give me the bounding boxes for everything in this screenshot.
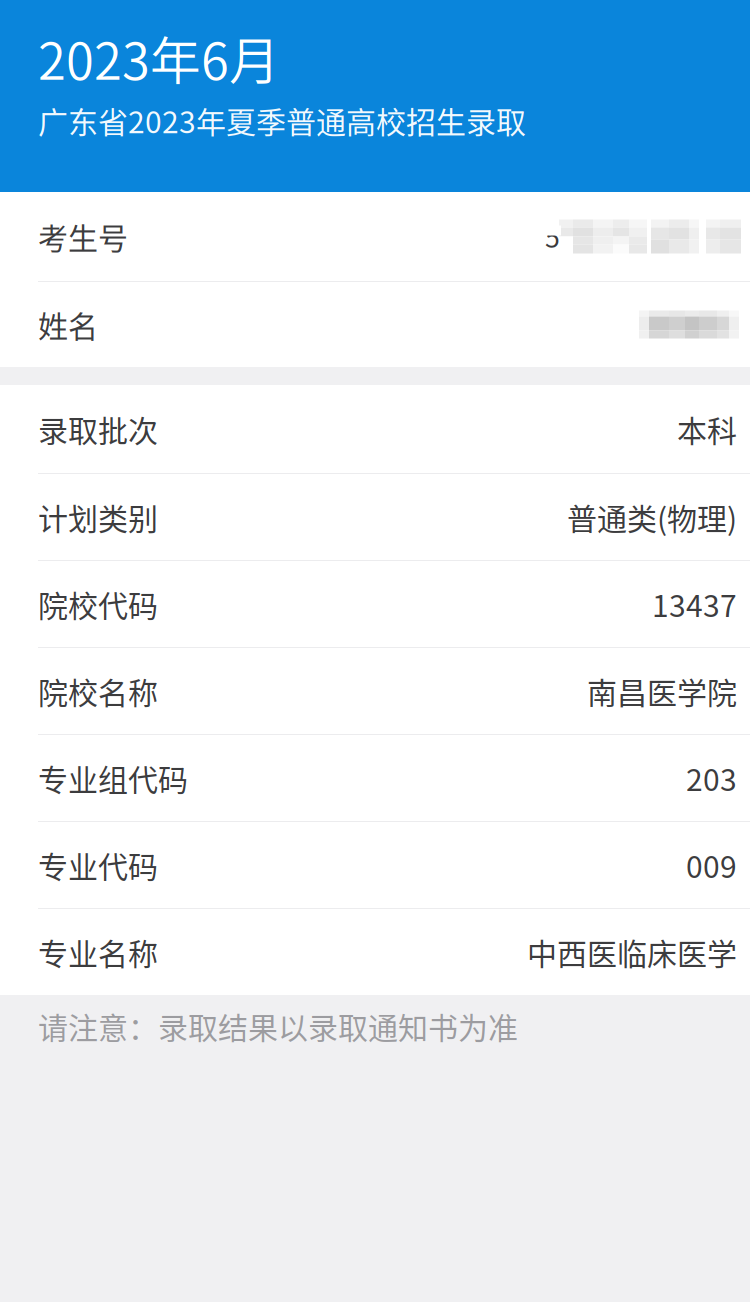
- staticText: 录取批次: [38, 407, 158, 451]
- staticText: 5: [545, 217, 560, 255]
- staticText: 普通类(物理): [567, 495, 737, 539]
- staticText: 专业组代码: [38, 756, 188, 800]
- staticText: 广东省2023年夏季普通高校招生录取: [38, 98, 526, 142]
- staticText: 13437: [652, 582, 737, 626]
- staticText: 考生号: [38, 215, 128, 258]
- button[interactable]: 专业名称: [0, 909, 750, 995]
- staticText: 计划类别: [38, 495, 158, 539]
- staticText: 2023年6月: [38, 21, 280, 94]
- button[interactable]: 专业组代码: [0, 735, 750, 821]
- button[interactable]: 计划类别: [0, 474, 750, 560]
- staticText: 请注意：录取结果以录取通知书为准: [38, 1004, 518, 1048]
- staticText: 南昌医学院: [587, 669, 737, 713]
- button[interactable]: 录取批次: [0, 385, 750, 473]
- button[interactable]: 院校代码: [0, 561, 750, 647]
- button[interactable]: 专业代码: [0, 822, 750, 908]
- staticText: 院校代码: [38, 582, 158, 626]
- button[interactable]: 考生号，已隐藏: [0, 192, 750, 281]
- staticText: 203: [686, 756, 737, 800]
- staticText: 专业代码: [38, 843, 158, 887]
- button[interactable]: 院校名称: [0, 648, 750, 734]
- staticText: 专业名称: [38, 930, 158, 974]
- staticText: 中西医临床医学: [527, 930, 737, 974]
- staticText: 009: [686, 843, 737, 887]
- staticText: 本科: [677, 407, 737, 451]
- button[interactable]: 姓名，已隐藏: [0, 282, 750, 367]
- staticText: 姓名: [38, 303, 98, 346]
- staticText: 院校名称: [38, 669, 158, 713]
